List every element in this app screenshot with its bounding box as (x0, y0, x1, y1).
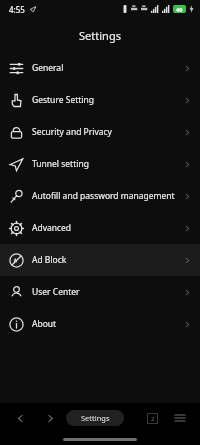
staticText: Tunnel setting (32, 158, 89, 170)
staticText: Settings (81, 413, 110, 423)
staticText: 4:55 (9, 4, 25, 15)
staticText: General (32, 62, 64, 74)
button[interactable]: Advanced (0, 212, 200, 244)
staticText: 40 (176, 6, 183, 13)
staticText: About (32, 318, 57, 330)
button[interactable]: Forward (40, 408, 60, 428)
staticText: Autofill and password management (32, 190, 175, 202)
staticText: Security and Privacy (32, 126, 112, 138)
button[interactable]: Menu (170, 408, 190, 428)
button[interactable]: Gesture Setting (0, 84, 200, 116)
button[interactable]: Settings (66, 410, 124, 426)
button[interactable]: About (0, 308, 200, 340)
staticText: 2 (151, 415, 155, 423)
staticText: Settings (79, 28, 121, 43)
button[interactable]: Ad Block (0, 244, 200, 276)
button[interactable]: Tabs (142, 408, 162, 428)
button[interactable]: General (0, 52, 200, 84)
button[interactable]: Security and Privacy (0, 116, 200, 148)
staticText: User Center (32, 286, 80, 298)
button[interactable]: Autofill and password management (0, 180, 200, 212)
button[interactable]: Tunnel setting (0, 148, 200, 180)
button[interactable]: User Center (0, 276, 200, 308)
staticText: Advanced (32, 222, 72, 234)
staticText: Ad Block (32, 254, 67, 266)
staticText: Gesture Setting (32, 94, 94, 106)
button[interactable]: Back (10, 408, 30, 428)
